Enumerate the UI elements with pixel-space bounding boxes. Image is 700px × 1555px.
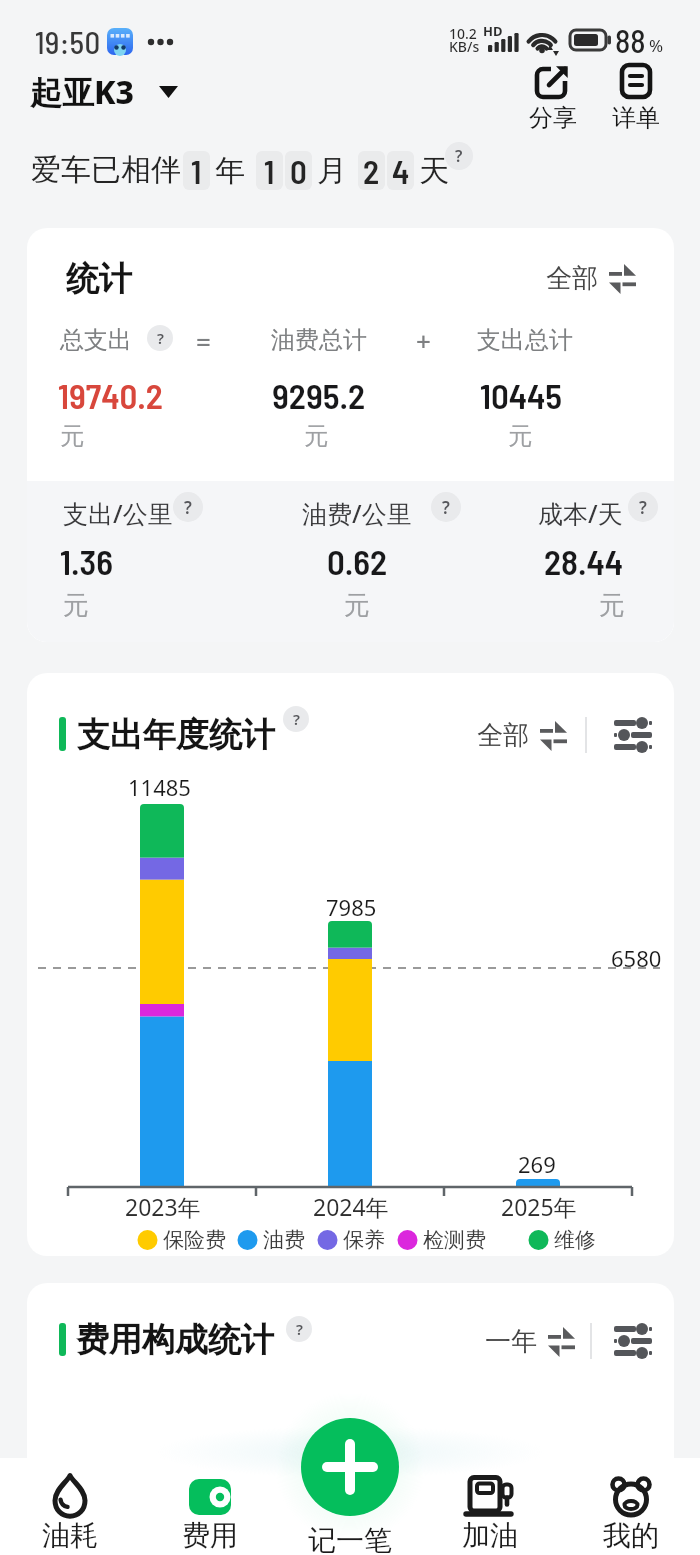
button[interactable]: ? <box>431 492 461 522</box>
staticText: 2023年 <box>125 1191 201 1222</box>
staticText: 元 <box>63 589 89 622</box>
staticText: 油耗 <box>42 1518 98 1553</box>
staticText: KB/s <box>449 37 480 56</box>
staticText: 11485 <box>128 772 191 802</box>
staticText: ? <box>442 496 450 519</box>
staticText: 7985 <box>326 892 377 922</box>
staticText: 28.44 <box>544 540 624 582</box>
staticText: 记一笔 <box>308 1523 392 1555</box>
button[interactable] <box>586 1462 676 1555</box>
staticText: 88 <box>615 21 646 59</box>
button[interactable] <box>25 1462 115 1555</box>
staticText: 一年 <box>485 1325 537 1358</box>
staticText: 成本/天 <box>538 496 623 530</box>
staticText: 2 <box>363 151 380 190</box>
button[interactable]: ? <box>286 1316 312 1342</box>
staticText: 支出年度统计 <box>77 714 275 756</box>
staticText: 6580 <box>611 943 662 973</box>
staticText: 支出/公里 <box>63 496 173 530</box>
button[interactable]: 一年 <box>471 1319 575 1363</box>
staticText: 全部 <box>477 719 529 752</box>
staticText: ? <box>296 1319 303 1339</box>
button[interactable]: ? <box>173 492 203 522</box>
staticText: 4 <box>392 151 410 190</box>
staticText: ? <box>293 709 300 729</box>
button[interactable] <box>605 1319 661 1363</box>
staticText: 油费/公里 <box>302 496 412 530</box>
staticText: 加油 <box>462 1518 518 1553</box>
button[interactable] <box>165 1462 255 1555</box>
staticText: 费用构成统计 <box>76 1319 274 1361</box>
staticText: 元 <box>304 421 328 451</box>
staticText: 0 <box>290 151 307 190</box>
staticText: 9295.2 <box>272 374 365 416</box>
staticText: 全部 <box>546 262 598 295</box>
staticText: 油费 <box>263 1227 305 1253</box>
staticText: 保险费 <box>163 1227 226 1253</box>
button[interactable] <box>605 713 661 757</box>
staticText: 详单 <box>612 103 660 133</box>
staticText: 269 <box>518 1149 556 1179</box>
button[interactable]: ? <box>445 142 473 170</box>
staticText: 2025年 <box>501 1191 577 1222</box>
staticText: 元 <box>60 421 84 451</box>
staticText: 元 <box>599 589 625 622</box>
staticText: 0.62 <box>327 540 388 582</box>
button[interactable]: ? <box>283 706 309 732</box>
staticText: 19:50 <box>35 23 101 60</box>
button[interactable] <box>301 1418 399 1516</box>
staticText: % <box>649 34 664 57</box>
button[interactable] <box>305 1462 395 1555</box>
staticText: 维修 <box>554 1227 596 1253</box>
staticText: ? <box>184 496 192 519</box>
staticText: 1.36 <box>60 540 113 582</box>
staticText: 天 <box>419 152 449 190</box>
staticText: ? <box>639 496 647 519</box>
staticText: 2024年 <box>313 1191 389 1222</box>
staticText: 总支出 <box>60 325 132 355</box>
staticText: 1 <box>264 151 275 190</box>
staticText: ? <box>157 328 164 348</box>
staticText: 年 <box>215 152 245 190</box>
staticText: = <box>196 323 211 358</box>
staticText: 起亚K3 <box>30 70 135 114</box>
staticText: 统计 <box>66 258 132 300</box>
staticText: 费用 <box>182 1518 238 1553</box>
button[interactable]: 全部 <box>463 713 567 757</box>
staticText: 元 <box>508 421 532 451</box>
staticText: 分享 <box>529 103 577 133</box>
button[interactable]: 起亚K3 <box>30 68 190 116</box>
staticText: 保养 <box>343 1227 385 1253</box>
button[interactable] <box>445 1462 535 1555</box>
button[interactable]: ? <box>147 325 173 351</box>
button[interactable]: 分享 <box>528 64 578 136</box>
staticText: 月 <box>317 152 347 190</box>
staticText: HD <box>483 22 503 40</box>
staticText: + <box>416 323 431 358</box>
button[interactable]: ? <box>628 492 658 522</box>
button[interactable]: 详单 <box>611 64 661 136</box>
staticText: 元 <box>344 589 370 622</box>
staticText: 10.2 <box>449 24 477 43</box>
staticText: 支出总计 <box>477 325 573 355</box>
button[interactable]: 全部 <box>532 256 636 300</box>
staticText: 检测费 <box>423 1227 486 1253</box>
staticText: 19740.2 <box>58 374 163 416</box>
staticText: 爱车已相伴 <box>31 151 181 189</box>
staticText: 1 <box>191 151 202 190</box>
staticText: 我的 <box>603 1518 659 1553</box>
staticText: 油费总计 <box>271 325 367 355</box>
staticText: 10445 <box>480 374 563 416</box>
staticText: ? <box>455 145 463 167</box>
